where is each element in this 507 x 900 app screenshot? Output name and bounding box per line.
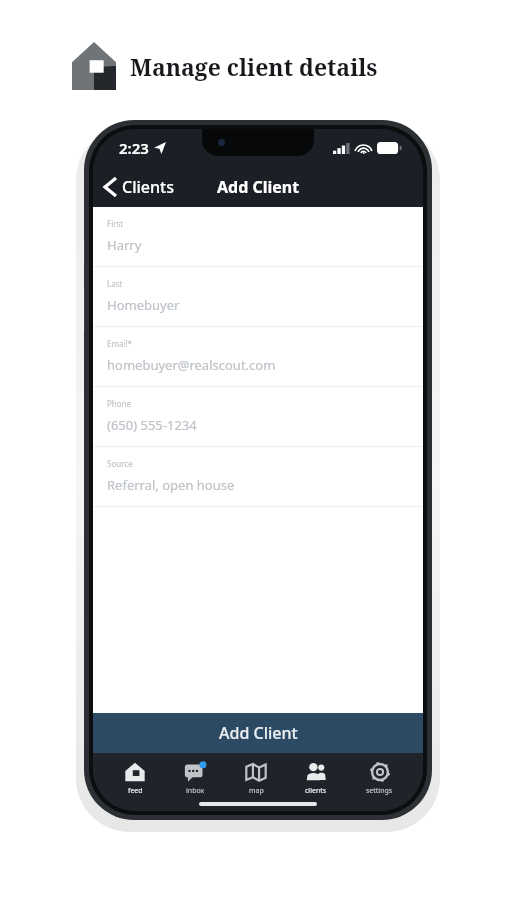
staticText: Last xyxy=(107,278,123,289)
button[interactable]: clients xyxy=(297,759,335,798)
staticText: 2:23 xyxy=(119,138,149,158)
staticText: feed xyxy=(128,786,143,796)
staticText: Clients xyxy=(122,176,174,198)
staticText: map xyxy=(249,786,264,796)
staticText: clients xyxy=(305,786,327,796)
staticText: Referral, open house xyxy=(107,476,235,494)
staticText: inbox xyxy=(186,786,205,796)
staticText: homebuyer@realscout.com xyxy=(107,356,276,374)
staticText: Email* xyxy=(107,338,132,349)
button[interactable]: Add Client xyxy=(93,713,423,753)
button[interactable]: settings xyxy=(358,759,401,798)
staticText: First xyxy=(107,218,124,229)
staticText: Harry xyxy=(107,236,142,254)
button[interactable]: feed xyxy=(116,759,154,798)
staticText: Add Client xyxy=(217,176,300,198)
button[interactable]: First xyxy=(93,207,423,267)
staticText: (650) 555-1234 xyxy=(107,416,197,434)
button[interactable]: Source xyxy=(93,447,423,507)
staticText: settings xyxy=(366,786,393,796)
button[interactable]: Phone xyxy=(93,387,423,447)
button[interactable]: map xyxy=(237,759,275,798)
staticText: Source xyxy=(107,458,133,469)
staticText: Add Client xyxy=(219,722,298,744)
staticText: Homebuyer xyxy=(107,296,180,314)
staticText: Phone xyxy=(107,398,132,409)
button[interactable]: Clients xyxy=(93,172,184,202)
button[interactable]: Last xyxy=(93,267,423,327)
button[interactable]: inbox xyxy=(176,759,214,798)
staticText: Manage client details xyxy=(130,51,378,82)
button[interactable]: Email* xyxy=(93,327,423,387)
